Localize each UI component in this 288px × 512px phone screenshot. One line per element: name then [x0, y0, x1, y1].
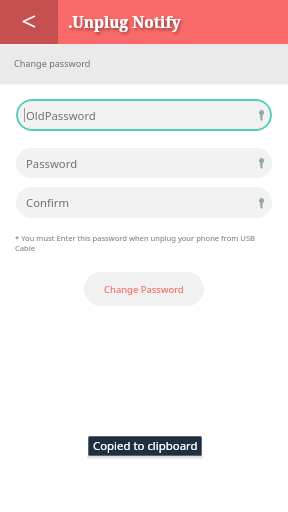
staticText: * You must Enter this password when unpl… [15, 233, 267, 253]
button[interactable]: OldPassword [16, 99, 272, 131]
staticText: Change Password [104, 283, 184, 296]
button[interactable]: Change Password [84, 272, 204, 306]
staticText: .Unplug Notify [68, 12, 181, 33]
staticText: Password [26, 156, 78, 171]
button[interactable]: Password [16, 148, 272, 178]
staticText: OldPassword [26, 108, 96, 123]
staticText: Change password [14, 57, 91, 69]
staticText: Confirm [26, 195, 69, 210]
button[interactable]: Back [0, 0, 58, 44]
button[interactable]: Confirm [16, 187, 272, 218]
staticText: Copied to clipboard [93, 438, 198, 454]
